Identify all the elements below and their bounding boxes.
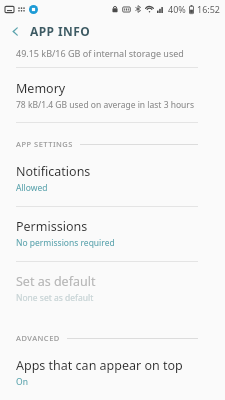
staticText: APP SETTINGS <box>16 139 73 149</box>
staticText: 16:52 <box>197 3 221 15</box>
staticText: Allowed <box>16 182 48 194</box>
staticText: Notifications <box>16 163 91 180</box>
button[interactable]: Apps that can appear on top <box>0 357 225 400</box>
staticText: 40% <box>168 3 186 15</box>
staticText: Memory <box>16 80 66 97</box>
staticText: None set as default <box>16 292 94 304</box>
staticText: Apps that can appear on top <box>16 357 183 374</box>
button[interactable]: Back <box>0 18 30 44</box>
staticText: ADVANCED <box>16 333 60 343</box>
staticText: APP INFO <box>30 23 91 39</box>
button[interactable]: Permissions <box>0 207 225 261</box>
staticText: On <box>16 376 28 388</box>
button[interactable]: Notifications <box>0 163 225 206</box>
staticText: No permissions required <box>16 237 115 249</box>
staticText: Set as default <box>16 273 96 290</box>
button[interactable]: Memory <box>0 68 225 122</box>
staticText: Permissions <box>16 218 88 235</box>
staticText: 78 kB/1.4 GB used on average in last 3 h… <box>16 99 194 111</box>
staticText: 49.15 kB/16 GB of internal storage used <box>16 47 184 59</box>
